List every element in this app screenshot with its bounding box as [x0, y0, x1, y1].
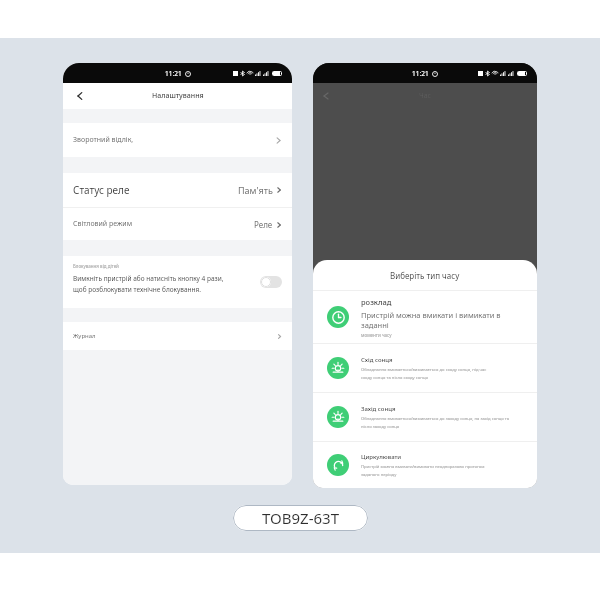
button[interactable]: Світловий режим [63, 208, 292, 240]
staticText: розклад [361, 297, 392, 307]
staticText: Обладнання вмикається/вимикається до схо… [361, 367, 487, 373]
staticText: Вимкніть пристрій або натисніть кнопку 4… [73, 274, 224, 283]
staticText: заданого періоду [361, 472, 397, 478]
staticText: Світловий режим [73, 219, 254, 229]
staticText: щоб розблокувати технічне блокування. [73, 285, 202, 294]
staticText: сходу сонця та після сходу сонця [361, 375, 428, 381]
staticText: 11:21 [412, 69, 429, 78]
button[interactable]: TOB9Z-63T [233, 505, 368, 531]
staticText: Зворотний відлік, [73, 135, 275, 145]
staticText: моменти часу [361, 332, 392, 338]
staticText: Налаштування [152, 91, 204, 101]
staticText: Реле [254, 219, 273, 230]
staticText: Час [419, 91, 432, 101]
button[interactable]: Схід сонця [327, 344, 527, 392]
staticText: Журнал [73, 332, 277, 340]
button[interactable]: Циркулювати [327, 442, 527, 488]
staticText: Пам'ять [238, 184, 273, 196]
button[interactable]: Child lock toggle [260, 276, 282, 288]
button[interactable]: Блокування від дітей [63, 256, 292, 308]
staticText: Схід сонця [361, 356, 393, 364]
staticText: Виберіть тип часу [390, 270, 460, 281]
staticText: TOB9Z-63T [262, 508, 339, 528]
button[interactable]: Back [71, 87, 89, 105]
staticText: 11:21 [165, 69, 182, 78]
button[interactable]: Журнал [63, 322, 292, 350]
staticText: Циркулювати [361, 453, 402, 461]
staticText: Пристрій можна вмикати і вимикати в зада… [361, 310, 527, 330]
button[interactable]: Захід сонця [327, 393, 527, 441]
button[interactable]: Зворотний відлік, [63, 123, 292, 157]
button[interactable]: Back [321, 91, 331, 101]
staticText: Блокування від дітей [73, 263, 119, 269]
staticText: Захід сонця [361, 405, 396, 413]
button[interactable]: розклад [327, 291, 527, 343]
staticText: Пристрій можна вмикати/вимикати неоднора… [361, 464, 485, 470]
staticText: Обладнання вмикається/вимикається до зах… [361, 416, 510, 422]
staticText: після заходу сонця [361, 424, 400, 430]
staticText: Статус реле [73, 183, 238, 197]
button[interactable]: Статус реле [63, 173, 292, 207]
